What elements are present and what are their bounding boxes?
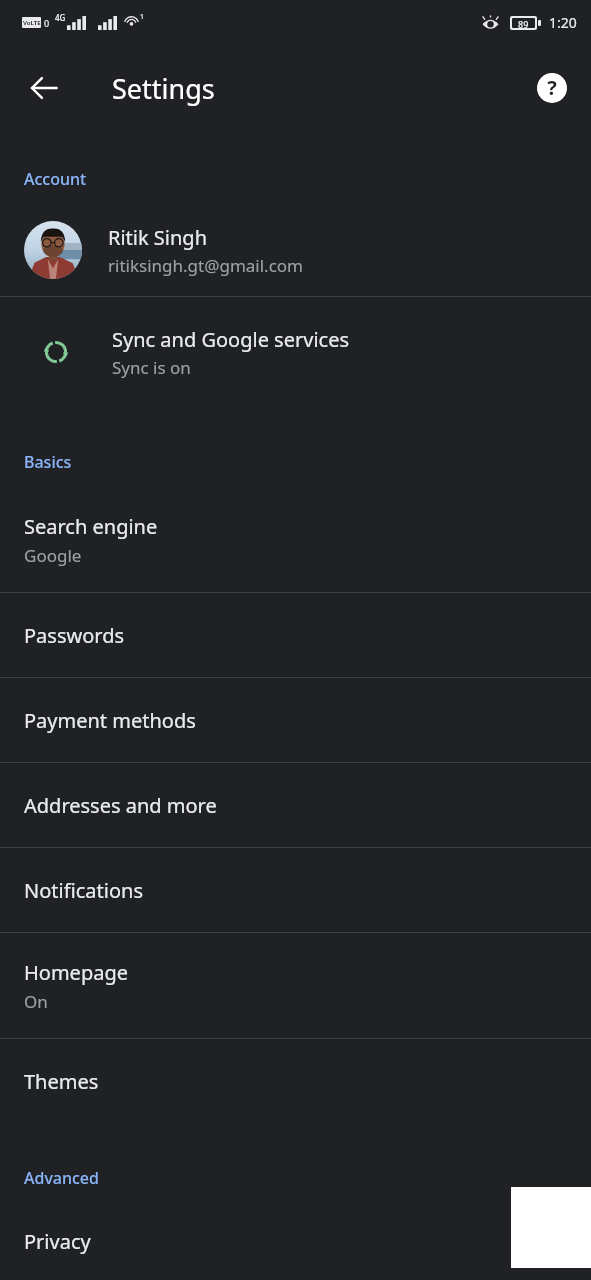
staticText: Advanced	[24, 1167, 99, 1189]
button[interactable]: Themes	[0, 1039, 591, 1123]
staticText: Passwords	[24, 622, 125, 649]
staticText: Addresses and more	[24, 792, 217, 819]
button[interactable]: Sync and Google services	[0, 297, 591, 407]
staticText: ?	[547, 74, 557, 101]
button[interactable]: Search engine	[0, 487, 591, 592]
staticText: Search engine	[24, 513, 158, 540]
staticText: 1:20	[549, 13, 577, 32]
staticText: Sync and Google services	[112, 326, 350, 353]
staticText: Basics	[24, 451, 72, 473]
staticText: Google	[24, 544, 82, 567]
staticText: VoLTE	[23, 19, 41, 27]
staticText: On	[24, 990, 48, 1013]
button[interactable]: Homepage	[0, 933, 591, 1038]
staticText: Account	[24, 168, 87, 190]
button[interactable]: Privacy	[0, 1203, 591, 1280]
staticText: Homepage	[24, 959, 128, 986]
button[interactable]: Passwords	[0, 593, 591, 677]
button[interactable]: Notifications	[0, 848, 591, 932]
staticText: 0	[44, 17, 50, 29]
staticText: 89	[518, 18, 529, 28]
button[interactable]: Addresses and more	[0, 763, 591, 847]
staticText: 4G	[55, 12, 66, 23]
staticText: 1	[140, 12, 145, 22]
staticText: Sync is on	[112, 356, 191, 379]
staticText: Privacy	[24, 1228, 91, 1255]
staticText: Settings	[112, 70, 215, 107]
button[interactable]: Payment methods	[0, 678, 591, 762]
staticText: Themes	[24, 1068, 99, 1095]
button[interactable]: Help	[525, 61, 579, 115]
staticText: Notifications	[24, 877, 143, 904]
staticText: Ritik Singh	[108, 224, 208, 251]
button[interactable]: Back	[14, 58, 74, 118]
staticText: ritiksingh.gt@gmail.com	[108, 254, 303, 277]
button[interactable]: Ritik Singh	[0, 204, 591, 296]
staticText: Payment methods	[24, 707, 196, 734]
